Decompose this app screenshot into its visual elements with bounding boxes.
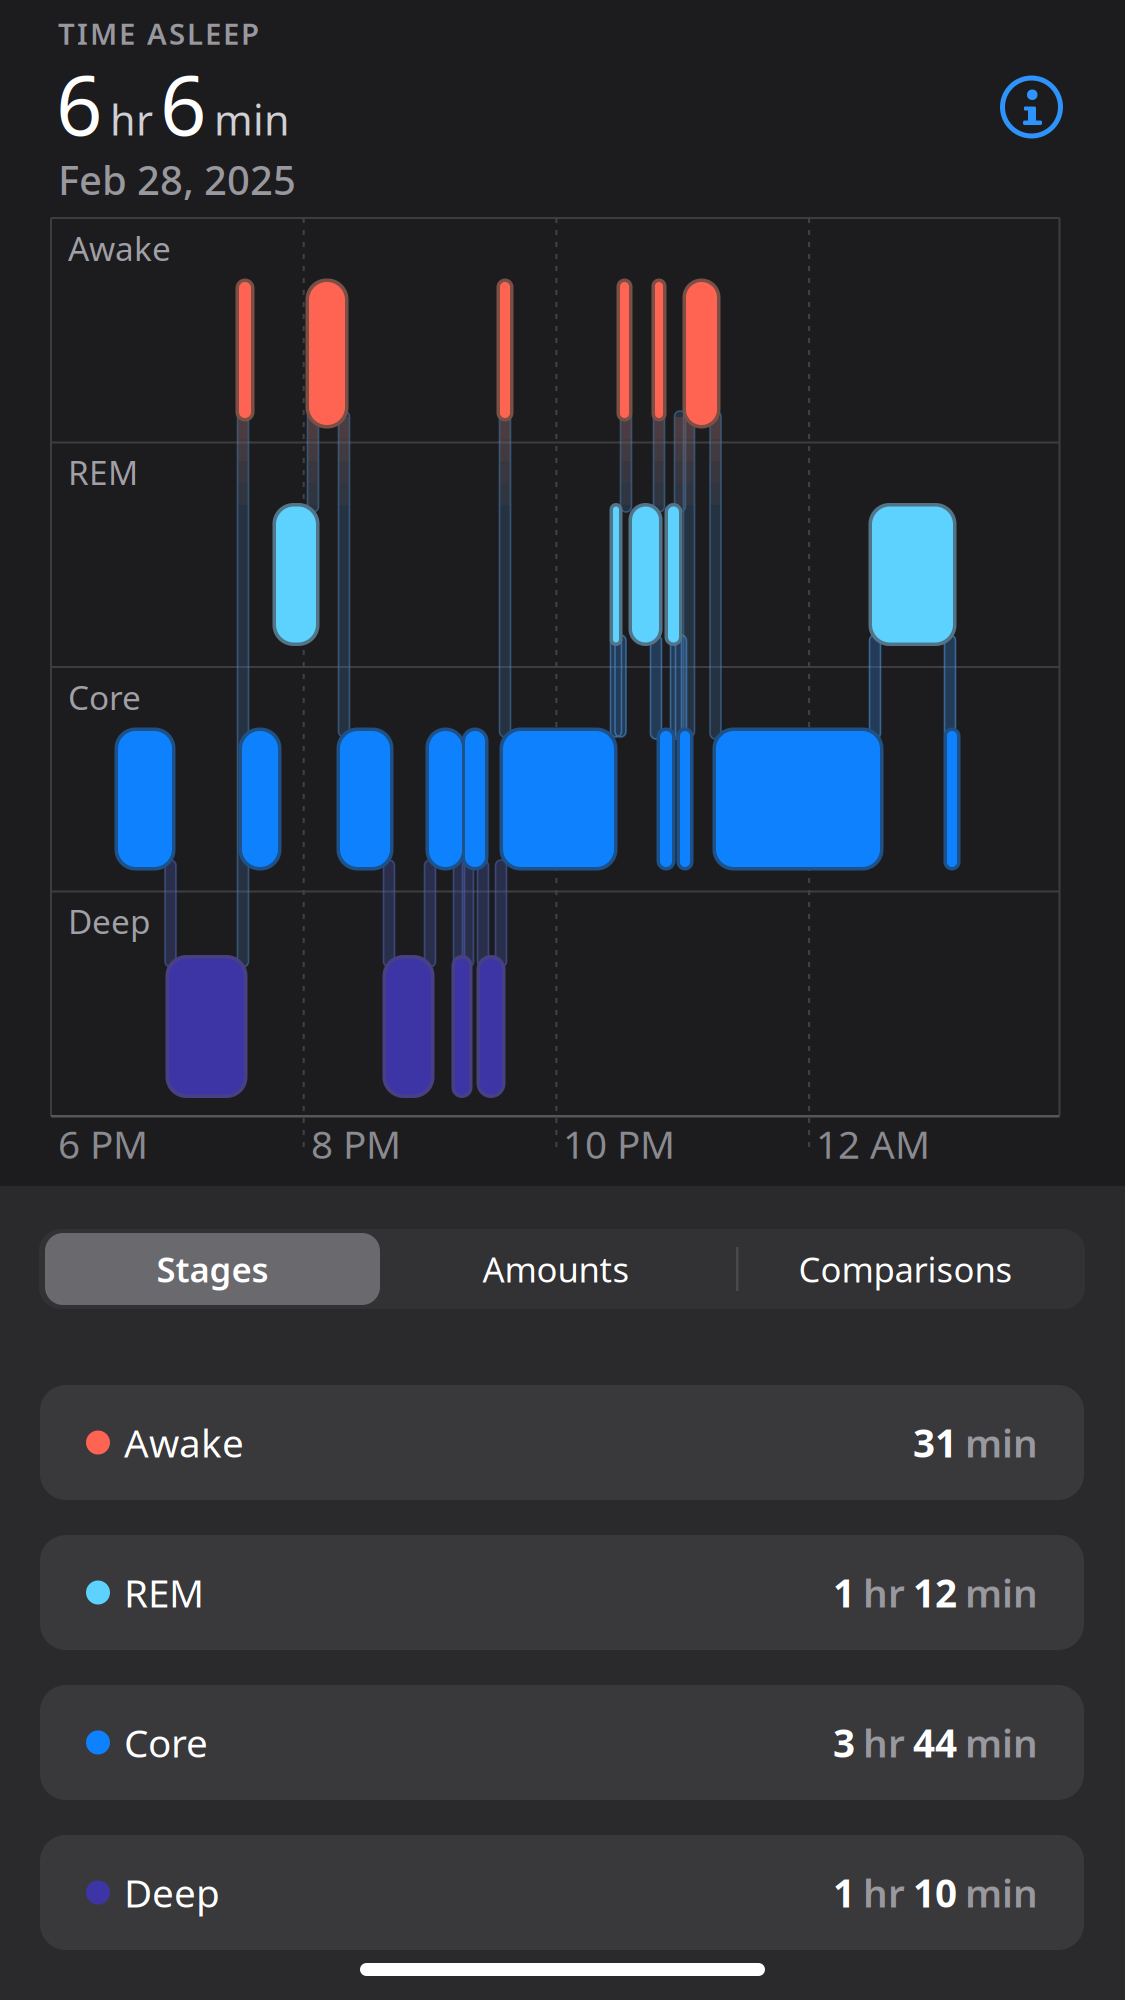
staticText: min — [965, 1567, 1038, 1618]
staticText: Core — [124, 1717, 208, 1768]
staticText: REM — [124, 1567, 204, 1618]
button[interactable]: REM — [40, 1535, 1084, 1650]
staticText: hr — [110, 92, 153, 147]
staticText: Feb 28, 2025 — [58, 153, 296, 206]
staticText: 1 — [833, 1867, 855, 1918]
button[interactable]: Comparisons — [0, 0, 1125, 2000]
staticText: hr — [863, 1717, 905, 1768]
button[interactable]: Core — [40, 1685, 1084, 1800]
staticText: Deep — [68, 899, 151, 943]
staticText: 10 PM — [563, 1118, 675, 1169]
staticText: min — [965, 1867, 1038, 1918]
staticText: hr — [863, 1567, 905, 1618]
staticText: 8 PM — [311, 1118, 401, 1169]
staticText: Deep — [124, 1867, 220, 1918]
staticText: REM — [68, 450, 138, 494]
staticText: hr — [863, 1867, 905, 1918]
staticText: 6 — [56, 50, 103, 158]
staticText: 12 — [913, 1567, 957, 1618]
staticText: min — [965, 1717, 1038, 1768]
button[interactable]: Awake — [40, 1385, 1084, 1500]
staticText: 3 — [833, 1717, 855, 1768]
staticText: min — [965, 1417, 1038, 1468]
staticText: 10 — [913, 1867, 957, 1918]
button[interactable]: Amounts — [0, 0, 1125, 2000]
staticText: 6 PM — [58, 1118, 148, 1169]
staticText: Comparisons — [798, 1246, 1012, 1292]
staticText: TIME ASLEEP — [58, 14, 259, 53]
button[interactable]: About Time Asleep — [1002, 78, 1060, 136]
staticText: Awake — [68, 226, 171, 270]
staticText: 31 — [913, 1417, 957, 1468]
staticText: 1 — [833, 1567, 855, 1618]
button[interactable]: Deep — [40, 1835, 1084, 1950]
staticText: 12 AM — [816, 1118, 930, 1169]
staticText: min — [214, 92, 290, 147]
staticText: Core — [68, 675, 141, 719]
staticText: Awake — [124, 1417, 244, 1468]
staticText: 6 — [160, 50, 207, 158]
button[interactable]: Stages — [0, 0, 1125, 2000]
staticText: Stages — [156, 1246, 268, 1292]
staticText: 44 — [913, 1717, 957, 1768]
staticText: Amounts — [482, 1246, 629, 1292]
